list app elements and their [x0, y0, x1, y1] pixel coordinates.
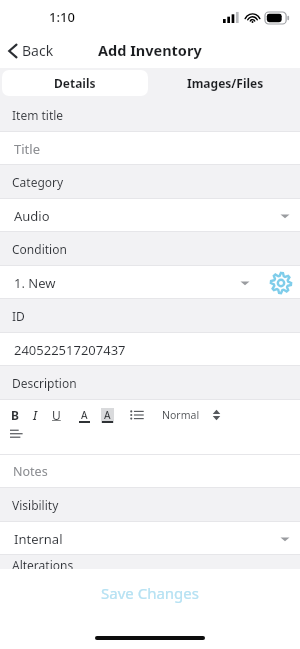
staticText: Internal: [14, 530, 63, 548]
staticText: 1. New: [14, 274, 56, 292]
staticText: Images/Files: [187, 75, 264, 91]
button[interactable]: Underline: [51, 406, 62, 424]
button[interactable]: 240522517207437: [0, 333, 300, 366]
staticText: Condition: [12, 241, 67, 257]
button[interactable]: Normal: [160, 406, 202, 424]
staticText: ID: [12, 308, 25, 324]
staticText: Description: [12, 375, 77, 391]
staticText: 240522517207437: [14, 341, 126, 359]
staticText: Alterations: [12, 557, 74, 569]
button[interactable]: Details: [2, 70, 148, 96]
button[interactable]: Back: [0, 37, 64, 64]
staticText: Add Inventory: [98, 40, 202, 60]
staticText: I: [33, 407, 38, 423]
button[interactable]: Bulleted list: [130, 409, 144, 421]
button[interactable]: Condition settings: [270, 272, 292, 294]
button[interactable]: Highlight color: [101, 408, 114, 423]
staticText: Audio: [14, 207, 50, 225]
button[interactable]: Text alignment: [10, 427, 24, 439]
button[interactable]: Save Changes: [0, 571, 300, 627]
staticText: Title: [14, 140, 40, 158]
staticText: Visibility: [12, 497, 59, 513]
button[interactable]: Change text size: [212, 408, 221, 422]
staticText: Normal: [162, 408, 200, 422]
staticText: Item title: [12, 107, 64, 123]
staticText: A: [81, 408, 88, 422]
staticText: U: [52, 407, 61, 423]
staticText: Back: [22, 41, 54, 60]
button[interactable]: Bold: [10, 406, 20, 424]
button[interactable]: Italic: [32, 406, 39, 424]
staticText: A: [104, 408, 111, 422]
button[interactable]: Audio: [0, 199, 300, 232]
button[interactable]: Title: [0, 132, 300, 165]
button[interactable]: Notes: [0, 455, 300, 488]
button[interactable]: Text color: [78, 408, 91, 423]
staticText: Notes: [13, 463, 48, 480]
staticText: Details: [54, 75, 96, 91]
staticText: 1:10: [49, 8, 75, 26]
staticText: B: [11, 407, 19, 423]
staticText: Save Changes: [101, 583, 199, 603]
button[interactable]: Images/Files: [150, 68, 300, 98]
staticText: Category: [12, 174, 64, 190]
button[interactable]: Internal: [0, 522, 300, 555]
